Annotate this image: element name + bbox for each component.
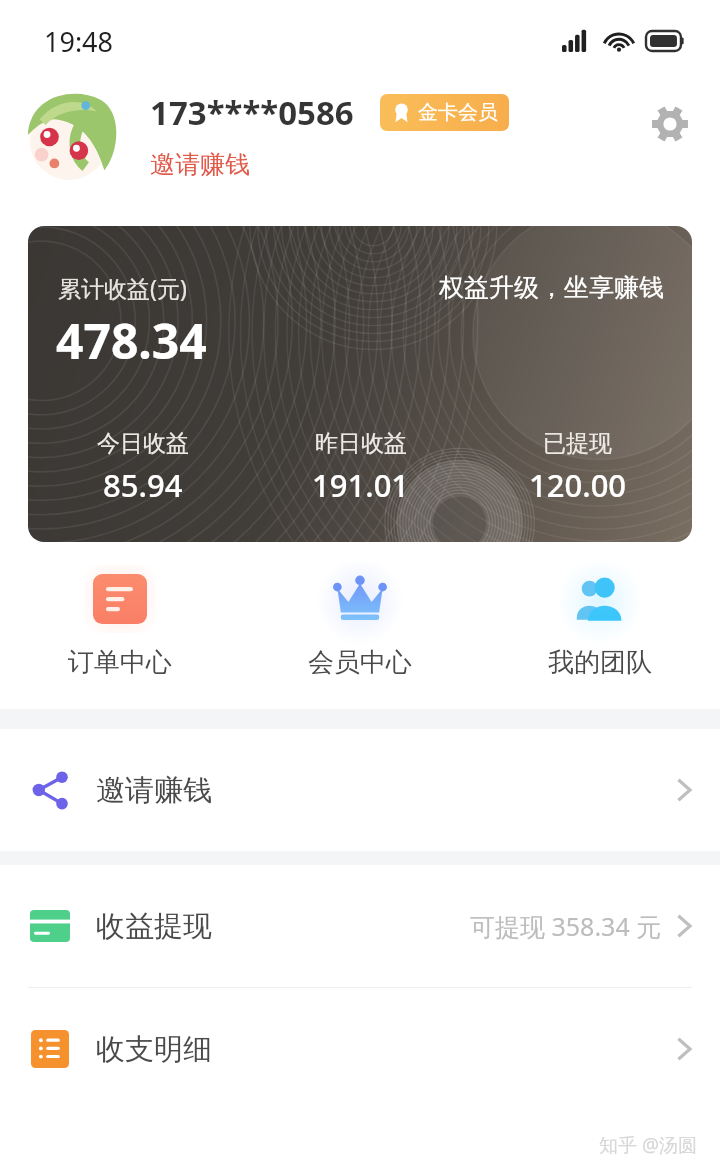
staticText: 权益升级，坐享赚钱: [439, 272, 664, 303]
staticText: 可提现 358.34 元: [470, 909, 662, 943]
button[interactable]: 订单中心: [0, 564, 240, 683]
button[interactable]: 累计收益(元): [28, 226, 692, 542]
staticText: 知乎 @汤圆: [599, 1132, 698, 1158]
staticText: 191.01: [312, 464, 410, 506]
staticText: 收支明细: [96, 1031, 212, 1068]
staticText: 已提现: [543, 429, 612, 458]
staticText: 19:48: [44, 23, 114, 60]
staticText: 478.34: [56, 308, 207, 373]
button[interactable]: Settings: [646, 100, 694, 148]
staticText: 120.00: [529, 464, 627, 506]
button[interactable]: Avatar: [24, 86, 122, 184]
button[interactable]: 金卡会员: [380, 94, 509, 131]
staticText: 会员中心: [308, 646, 412, 679]
staticText: 累计收益(元): [58, 272, 187, 303]
button[interactable]: 收支明细: [0, 988, 720, 1110]
button[interactable]: 会员中心: [240, 564, 480, 683]
staticText: 收益提现: [96, 908, 212, 945]
button[interactable]: 我的团队: [480, 564, 720, 683]
staticText: 今日收益: [97, 429, 189, 458]
staticText: 订单中心: [68, 646, 172, 679]
button[interactable]: 邀请赚钱: [150, 149, 250, 180]
staticText: 85.94: [103, 464, 183, 506]
staticText: 邀请赚钱: [150, 149, 250, 180]
button[interactable]: 收益提现: [0, 865, 720, 987]
staticText: 邀请赚钱: [96, 772, 212, 809]
button[interactable]: 邀请赚钱: [0, 729, 720, 851]
staticText: 我的团队: [548, 646, 652, 679]
staticText: 金卡会员: [418, 100, 498, 125]
staticText: 173****0586: [150, 90, 354, 135]
staticText: 昨日收益: [315, 429, 407, 458]
